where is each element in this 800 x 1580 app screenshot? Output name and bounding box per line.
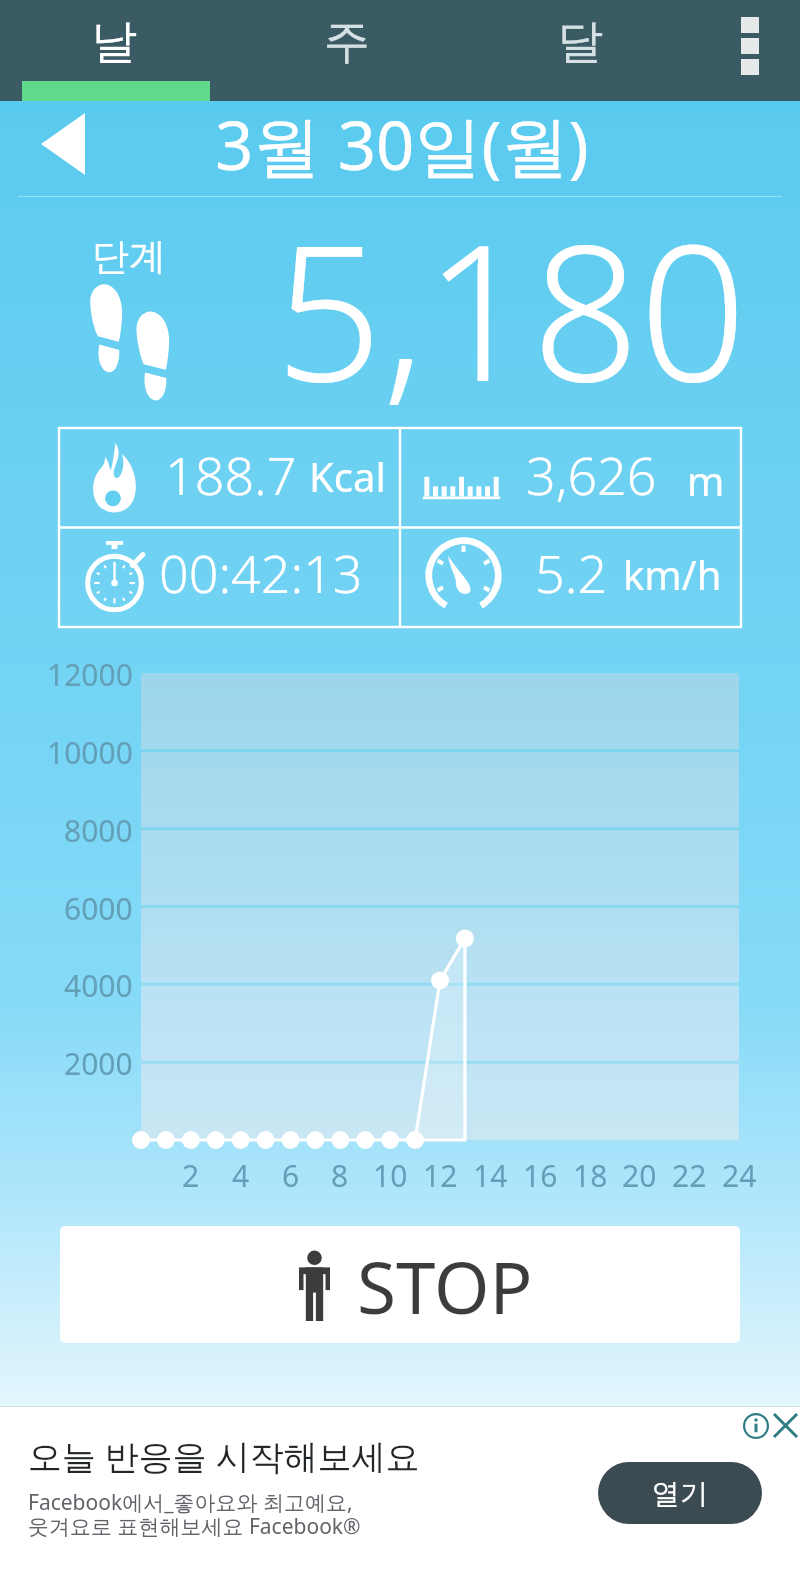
- staticText: 14: [473, 1155, 508, 1196]
- staticText: 6000: [64, 888, 133, 929]
- staticText: 5,180: [275, 180, 747, 436]
- staticText: km/h: [623, 547, 722, 601]
- staticText: 날: [91, 13, 137, 71]
- staticText: 10: [373, 1155, 408, 1196]
- staticText: 4: [232, 1155, 250, 1196]
- staticText: 5.2: [535, 537, 608, 608]
- staticText: m: [687, 453, 725, 507]
- button[interactable]: Close ad: [770, 1410, 800, 1440]
- staticText: 16: [523, 1155, 558, 1196]
- button[interactable]: [59, 527, 400, 627]
- staticText: 열기: [652, 1476, 708, 1511]
- staticText: 22: [672, 1155, 707, 1196]
- staticText: 2000: [64, 1043, 133, 1084]
- button[interactable]: STOP: [60, 1226, 740, 1343]
- button[interactable]: Previous day: [14, 100, 112, 188]
- staticText: STOP: [357, 1238, 533, 1335]
- button[interactable]: [400, 428, 741, 527]
- staticText: 달: [557, 13, 603, 71]
- button[interactable]: Ad information: [740, 1410, 772, 1442]
- staticText: 12000: [47, 654, 133, 695]
- staticText: 12: [423, 1155, 458, 1196]
- staticText: 20: [622, 1155, 657, 1196]
- button[interactable]: 날: [0, 0, 233, 81]
- staticText: 3,626: [526, 439, 657, 510]
- staticText: 단계: [92, 233, 166, 280]
- staticText: 오늘 반응을 시작해보세요: [28, 1433, 420, 1479]
- staticText: 3월 30일(월): [215, 98, 589, 190]
- staticText: 웃겨요로 표현해보세요 Facebook®: [28, 1512, 361, 1541]
- staticText: Kcal: [309, 449, 386, 503]
- button[interactable]: [400, 527, 741, 627]
- staticText: 00:42:13: [159, 537, 363, 608]
- staticText: 10000: [47, 732, 133, 773]
- staticText: 18: [573, 1155, 608, 1196]
- staticText: 8: [331, 1155, 349, 1196]
- staticText: 2: [182, 1155, 200, 1196]
- staticText: 6: [282, 1155, 300, 1196]
- button[interactable]: 달: [466, 0, 699, 81]
- staticText: 24: [722, 1155, 757, 1196]
- staticText: 주: [324, 13, 370, 71]
- staticText: 8000: [64, 810, 133, 851]
- staticText: 188.7: [165, 439, 297, 510]
- staticText: 4000: [64, 965, 133, 1006]
- button[interactable]: 열기: [598, 1462, 762, 1524]
- button[interactable]: 주: [233, 0, 466, 81]
- button[interactable]: More options: [699, 0, 800, 91]
- staticText: Facebook에서_좋아요와 최고예요,: [28, 1488, 353, 1517]
- button[interactable]: [59, 428, 400, 527]
